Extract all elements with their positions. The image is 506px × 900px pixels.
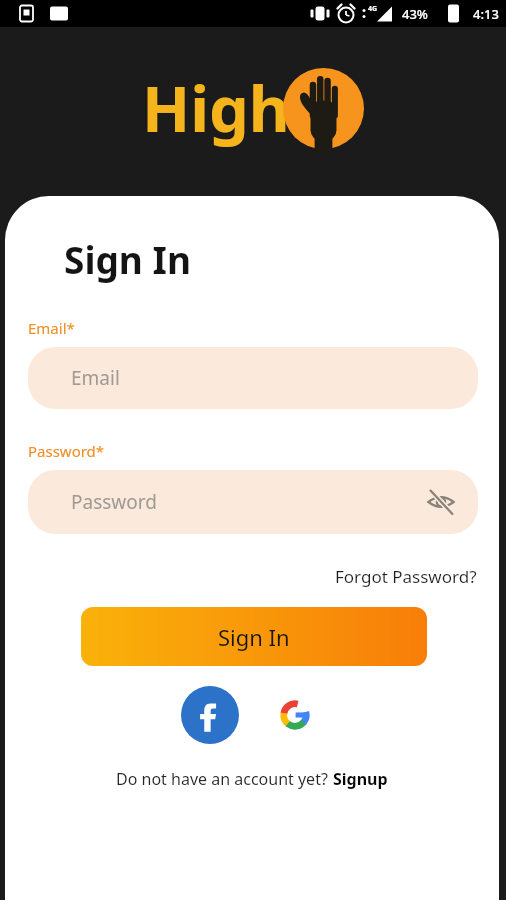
button[interactable]: Show password <box>422 483 460 521</box>
staticText: Forgot Password? <box>335 565 477 588</box>
staticText: 4:13 <box>473 5 499 23</box>
staticText: High <box>142 65 290 151</box>
button[interactable]: Do not have an account yet? <box>5 768 499 790</box>
staticText: Sign In <box>64 234 191 284</box>
staticText: Do not have an account yet? <box>116 768 333 790</box>
button[interactable]: Sign in with Facebook <box>181 686 239 744</box>
button[interactable]: Sign In <box>81 607 427 666</box>
staticText: Signup <box>333 768 388 790</box>
staticText: Password <box>71 489 157 515</box>
staticText: Email* <box>28 318 75 338</box>
staticText: 4G <box>368 4 378 14</box>
button[interactable]: Forgot Password? <box>332 562 480 591</box>
button[interactable]: Sign in with Google <box>266 686 324 744</box>
button[interactable]: Password <box>28 470 478 534</box>
staticText: Email <box>71 365 120 391</box>
staticText: 43% <box>402 5 428 23</box>
staticText: Password* <box>28 441 105 461</box>
button[interactable]: Email <box>28 347 478 409</box>
staticText: Sign In <box>218 622 290 652</box>
